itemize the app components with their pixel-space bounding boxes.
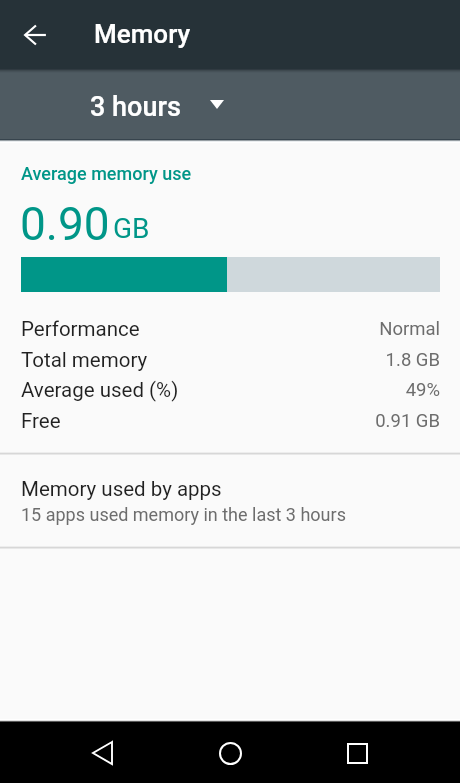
button[interactable]: Recent apps xyxy=(333,729,381,777)
staticText: 15 apps used memory in the last 3 hours xyxy=(21,504,346,525)
button[interactable]: Navigate up xyxy=(11,11,59,59)
staticText: 0.90 xyxy=(20,197,110,251)
staticText: Memory used by apps xyxy=(21,477,222,501)
button[interactable]: 3 hours xyxy=(78,81,236,133)
staticText: 49% xyxy=(0,379,440,401)
button[interactable]: Memory used by apps xyxy=(0,454,460,547)
staticText: Memory xyxy=(94,19,191,49)
staticText: Average used (%) xyxy=(21,378,179,402)
button[interactable]: Home xyxy=(206,729,254,777)
staticText: 3 hours xyxy=(90,91,181,123)
button[interactable]: Back xyxy=(78,729,126,777)
staticText: GB xyxy=(113,212,150,245)
staticText: 1.8 GB xyxy=(0,349,440,371)
staticText: Normal xyxy=(0,318,440,340)
staticText: Total memory xyxy=(21,348,148,372)
staticText: 0.91 GB xyxy=(0,410,440,432)
staticText: Performance xyxy=(21,317,140,341)
staticText: Average memory use xyxy=(21,163,192,184)
staticText: Free xyxy=(21,409,61,433)
